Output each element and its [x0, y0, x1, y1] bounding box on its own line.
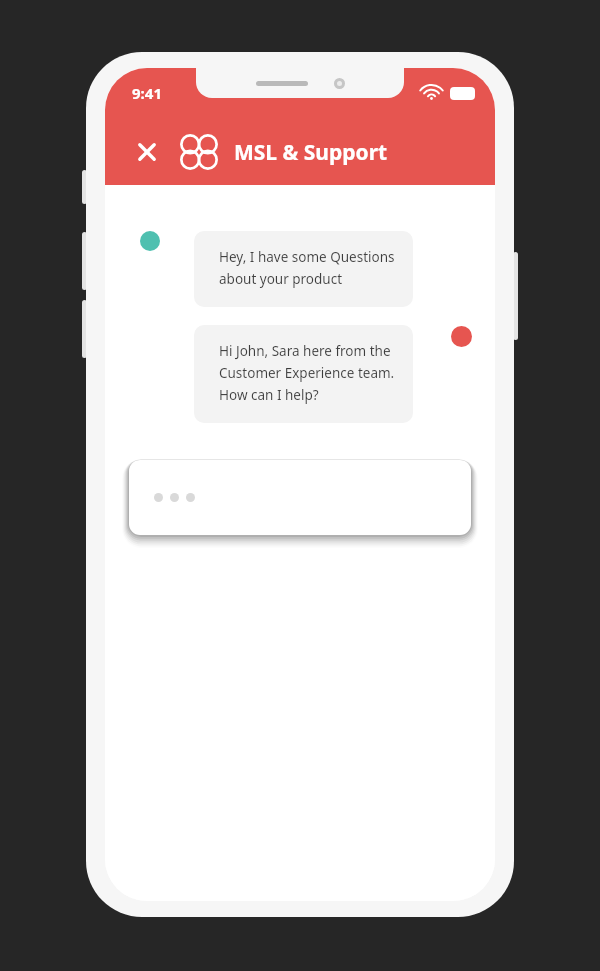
button[interactable]: Hey, I have some Questions about your pr… [194, 231, 413, 307]
button[interactable]: App logo [176, 129, 222, 175]
button[interactable]: Agent is typing [129, 460, 471, 535]
button[interactable]: Hi John, Sara here from the Customer Exp… [194, 325, 413, 423]
staticText: Hi John, Sara here from the Customer Exp… [219, 342, 395, 404]
button[interactable]: Close [124, 129, 170, 175]
staticText: 9:41 [132, 83, 162, 103]
staticText: Hey, I have some Questions about your pr… [219, 248, 395, 288]
staticText: MSL & Support [234, 138, 388, 167]
